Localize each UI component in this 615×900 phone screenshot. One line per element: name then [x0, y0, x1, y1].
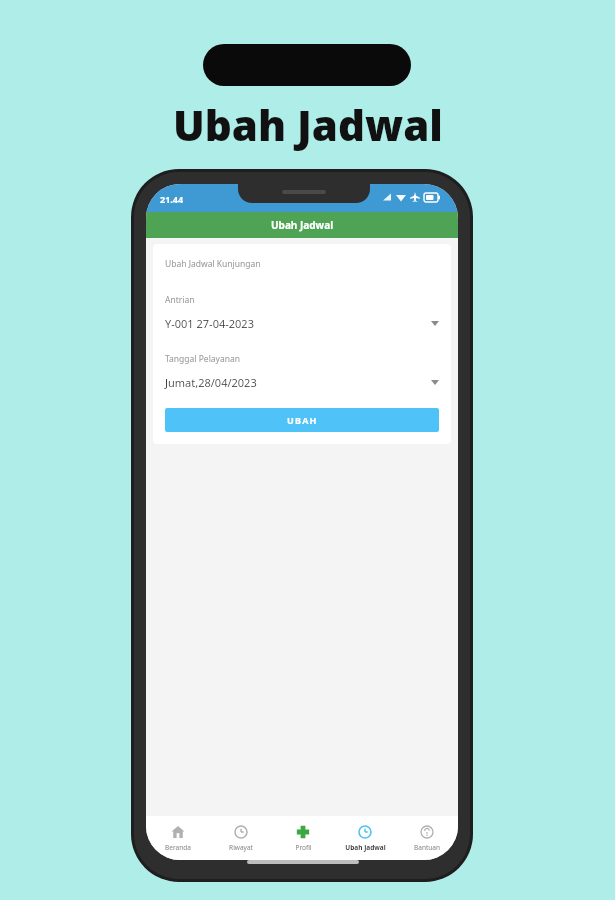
staticText: UBAH: [287, 414, 318, 426]
button[interactable]: Ubah Jadwal: [334, 816, 396, 860]
button[interactable]: Beranda: [146, 816, 209, 860]
button[interactable]: Y-001 27-04-2023: [165, 316, 439, 331]
staticText: Profil: [295, 843, 312, 852]
button[interactable]: Bantuan: [396, 816, 458, 860]
button[interactable]: Riwayat: [209, 816, 272, 860]
staticText: Jumat,28/04/2023: [165, 375, 431, 390]
staticText: Beranda: [165, 843, 191, 852]
staticText: Bantuan: [414, 843, 440, 852]
staticText: Ubah Jadwal: [173, 96, 443, 153]
staticText: Ubah Jadwal: [271, 218, 334, 232]
staticText: Riwayat: [229, 843, 253, 852]
staticText: Ubah Jadwal: [345, 843, 386, 852]
staticText: 21.44: [160, 193, 184, 205]
staticText: Ubah Jadwal Kunjungan: [165, 258, 261, 270]
staticText: Tanggal Pelayanan: [165, 353, 240, 365]
button[interactable]: UBAH: [165, 408, 439, 432]
staticText: Y-001 27-04-2023: [165, 316, 431, 331]
button[interactable]: Jumat,28/04/2023: [165, 375, 439, 390]
button[interactable]: Profil: [272, 816, 334, 860]
staticText: Antrian: [165, 294, 195, 306]
